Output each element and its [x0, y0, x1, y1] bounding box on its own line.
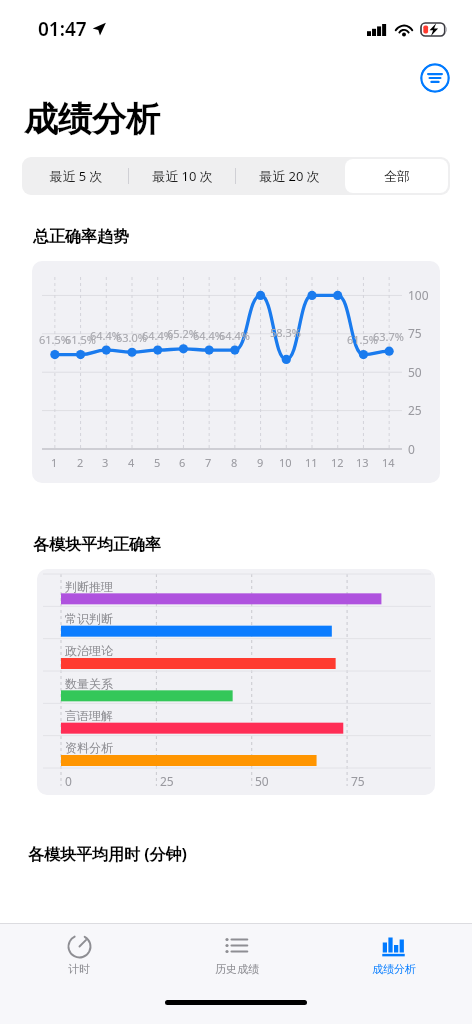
staticText: 64.4%: [90, 328, 121, 343]
staticText: 常识判断: [65, 611, 113, 626]
staticText: 10: [279, 455, 292, 470]
staticText: 14: [382, 455, 395, 470]
staticText: 2: [77, 455, 84, 470]
button[interactable]: 最近 20 次: [238, 159, 341, 193]
staticText: 64.4%: [142, 328, 173, 343]
staticText: 最近 10 次: [152, 167, 213, 185]
staticText: 历史成绩: [215, 962, 259, 976]
staticText: 资料分析: [65, 740, 113, 755]
staticText: 75: [351, 773, 365, 789]
button[interactable]: 全部: [345, 159, 448, 193]
staticText: 61.5%: [347, 332, 378, 347]
staticText: 计时: [68, 962, 90, 976]
staticText: 01:47: [38, 16, 87, 42]
staticText: 数量关系: [65, 676, 113, 691]
staticText: 言语理解: [65, 708, 113, 723]
staticText: 65.2%: [167, 326, 198, 341]
button[interactable]: 成绩分析: [315, 924, 472, 990]
staticText: 100: [408, 287, 429, 303]
staticText: 50: [408, 364, 422, 380]
button[interactable]: 历史成绩: [158, 924, 315, 990]
staticText: 7: [205, 455, 212, 470]
staticText: 50: [255, 773, 269, 789]
staticText: 61.5%: [39, 332, 70, 347]
staticText: 判断推理: [65, 579, 113, 594]
staticText: 0: [65, 773, 72, 789]
staticText: 63.7%: [373, 329, 404, 344]
staticText: 13: [356, 455, 369, 470]
staticText: 63.0%: [116, 330, 147, 345]
staticText: 25: [160, 773, 174, 789]
staticText: 0: [408, 441, 415, 457]
staticText: 成绩分析: [372, 962, 416, 976]
button[interactable]: Filter: [420, 63, 450, 93]
staticText: 政治理论: [65, 643, 113, 658]
staticText: 4: [128, 455, 135, 470]
staticText: 58.3%: [270, 325, 301, 340]
button[interactable]: 计时: [0, 924, 158, 990]
staticText: 1: [51, 455, 58, 470]
staticText: 9: [257, 455, 264, 470]
button[interactable]: 最近 10 次: [131, 159, 234, 193]
staticText: 8: [231, 455, 238, 470]
staticText: 5: [154, 455, 161, 470]
staticText: 3: [102, 455, 109, 470]
staticText: 75: [408, 325, 422, 341]
staticText: 6: [179, 455, 186, 470]
staticText: 64.4%: [193, 328, 224, 343]
staticText: 25: [408, 402, 422, 418]
staticText: 11: [305, 455, 318, 470]
staticText: 12: [331, 455, 344, 470]
staticText: 全部: [384, 168, 410, 184]
staticText: 最近 20 次: [259, 167, 320, 185]
staticText: 成绩分析: [24, 98, 160, 141]
staticText: 总正确率趋势: [33, 227, 129, 247]
staticText: 各模块平均正确率: [33, 535, 161, 555]
button[interactable]: 最近 5 次: [24, 159, 127, 193]
staticText: 61.5%: [65, 332, 96, 347]
staticText: 各模块平均用时 (分钟): [28, 843, 188, 865]
staticText: 最近 5 次: [49, 167, 103, 185]
staticText: 64.4%: [219, 328, 250, 343]
